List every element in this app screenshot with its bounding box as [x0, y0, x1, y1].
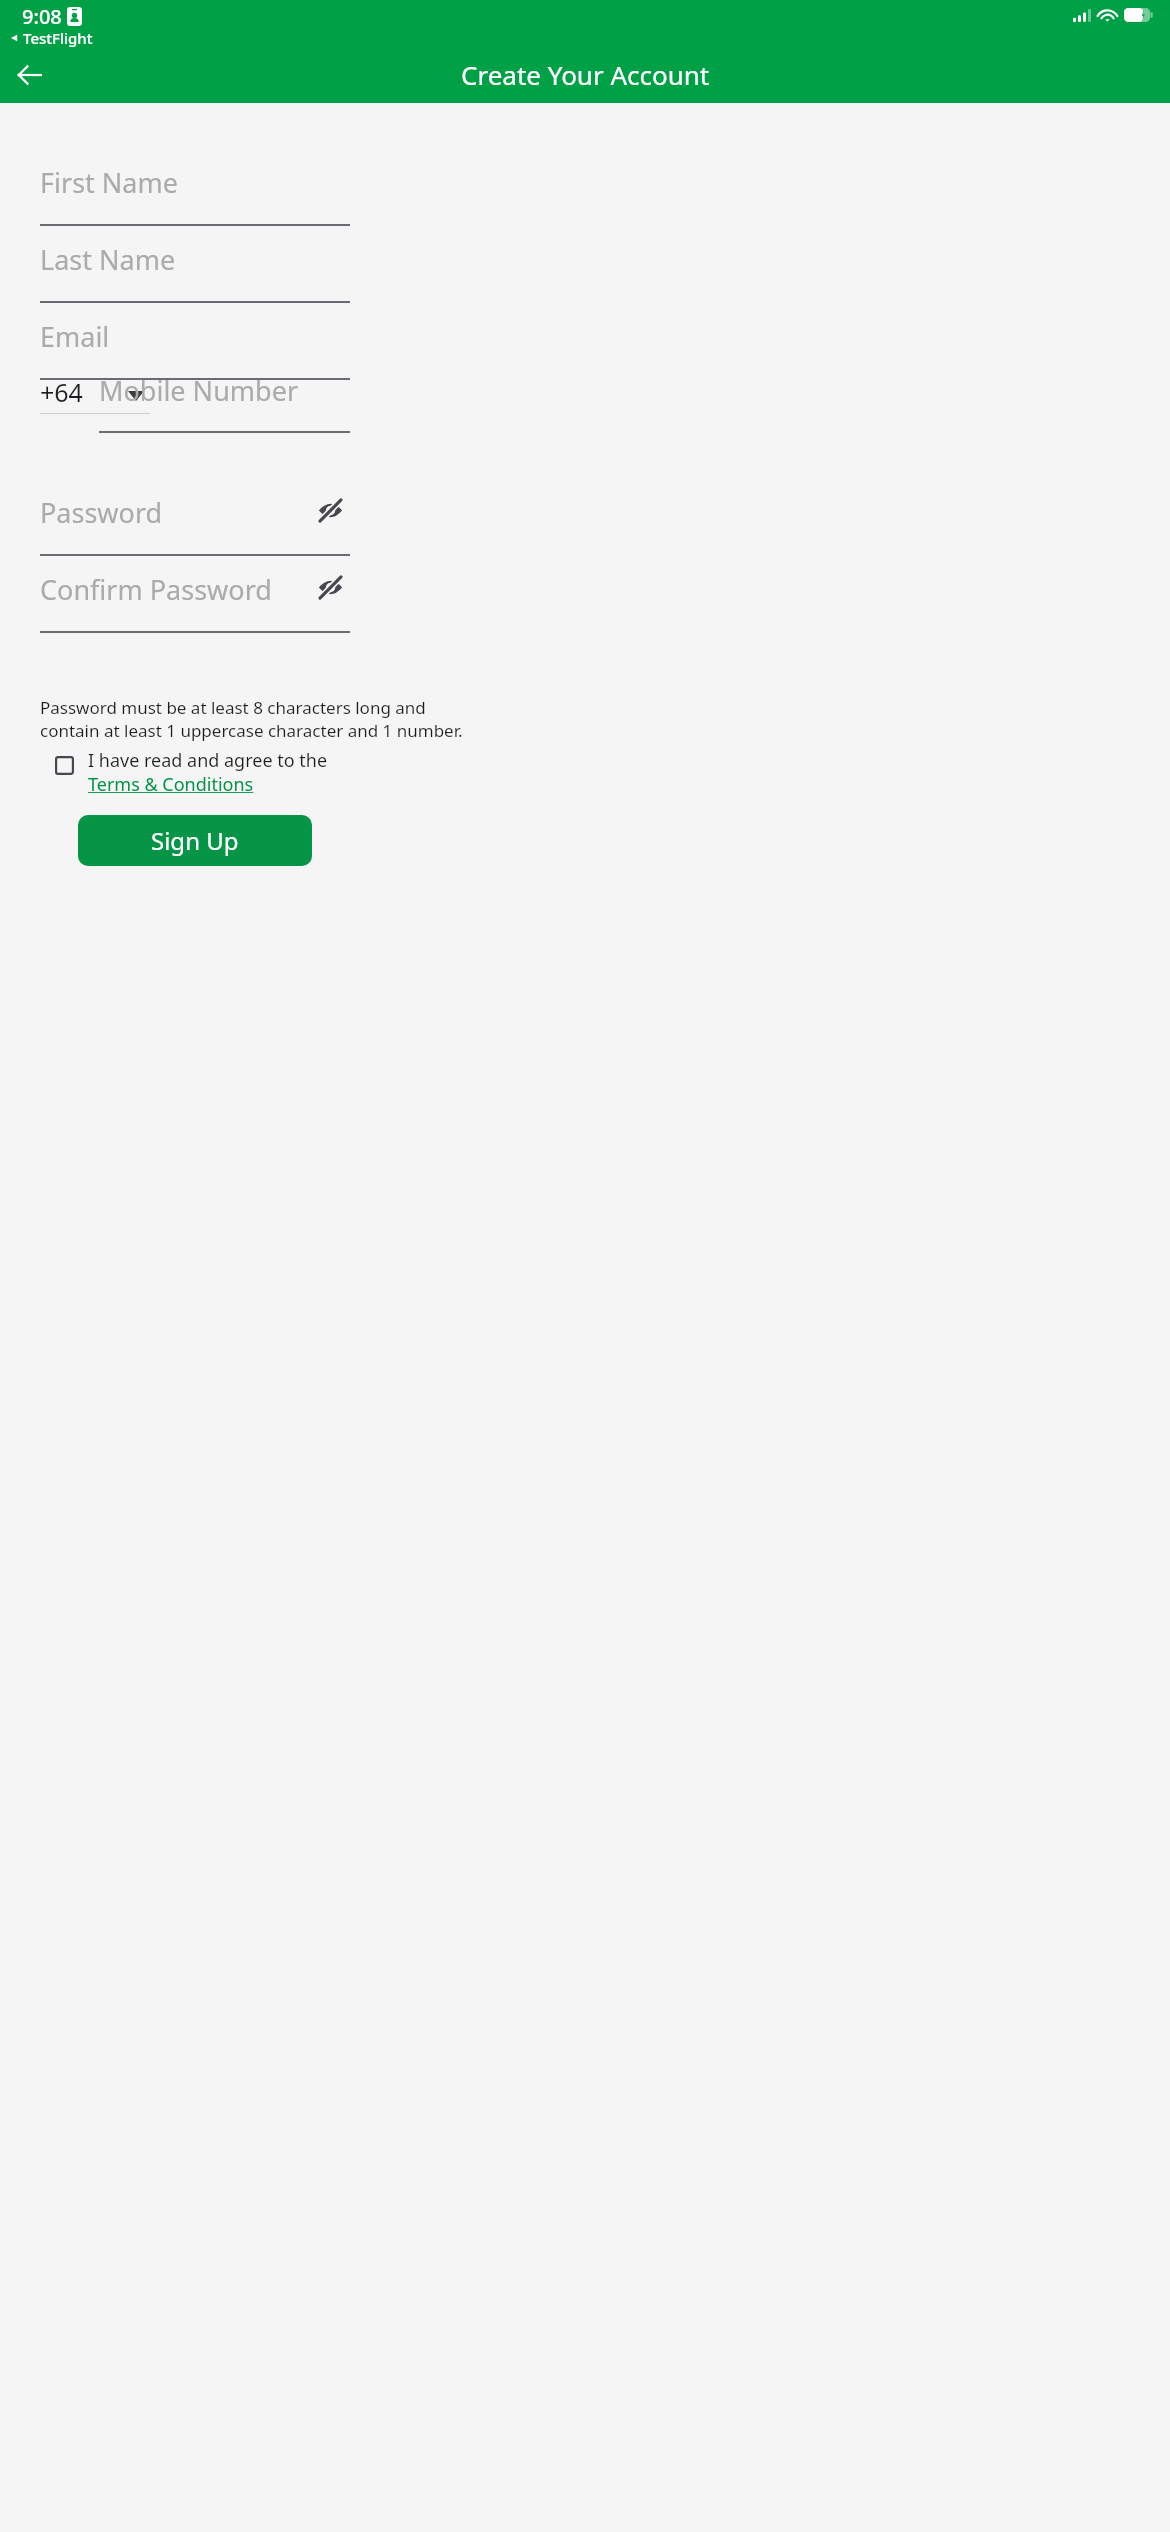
staticText: TestFlight	[23, 28, 93, 48]
button[interactable]: Password	[40, 488, 350, 556]
button[interactable]	[99, 365, 350, 429]
button[interactable]: Back	[6, 51, 54, 99]
staticText: Mobile Number	[99, 372, 299, 409]
button[interactable]: +64	[40, 370, 150, 414]
staticText: Last Name	[40, 241, 176, 278]
staticText: Sign Up	[151, 824, 239, 857]
button[interactable]: Last Name	[40, 235, 350, 303]
staticText: Password	[40, 494, 163, 531]
button[interactable]: Sign Up	[78, 815, 312, 866]
staticText: Password must be at least 8 characters l…	[40, 696, 463, 742]
button[interactable]: Confirm Password	[40, 565, 350, 633]
staticText: I have read and agree to the Terms & Con…	[88, 748, 356, 796]
staticText: First Name	[40, 164, 178, 201]
staticText: Confirm Password	[40, 571, 272, 608]
staticText: +64	[40, 375, 83, 409]
staticText: Email	[40, 318, 110, 355]
staticText: Create Your Account	[461, 57, 710, 92]
button[interactable]: I have read and agree to the Terms & Con…	[36, 748, 356, 796]
staticText: 9:08	[22, 3, 62, 30]
button[interactable]: Show password	[310, 490, 350, 530]
button[interactable]: Show password	[310, 567, 350, 607]
button[interactable]: First Name	[40, 158, 350, 226]
button[interactable]: Email	[40, 312, 350, 380]
